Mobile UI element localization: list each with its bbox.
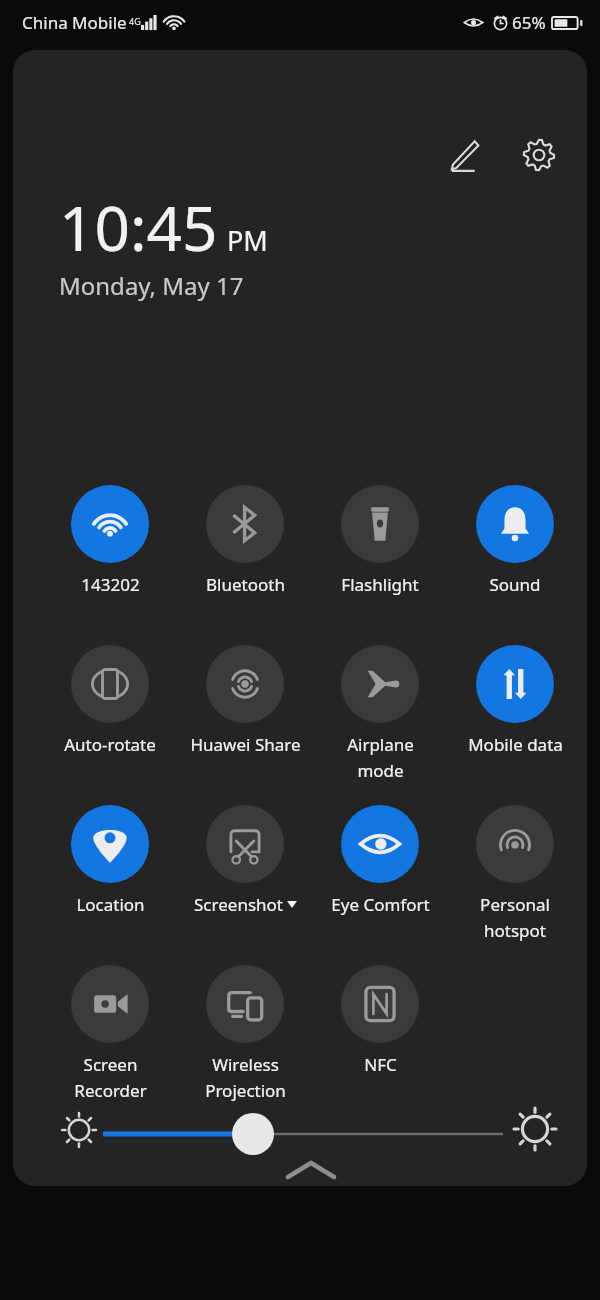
staticText: Eye Comfort [331,893,430,916]
button[interactable]: Personal hotspot [448,805,582,942]
staticText: PM [227,222,268,259]
button[interactable]: Increase brightness [504,1098,566,1160]
staticText: Huawei Share [190,733,301,756]
staticText: 4G [129,15,141,27]
staticText: Wireless Projection [205,1053,286,1102]
staticText: 10:45 [59,185,218,269]
button[interactable]: NFC [313,965,447,1076]
button[interactable]: Screenshot [178,805,312,916]
staticText: 65% [512,11,546,34]
button[interactable]: Auto-rotate [43,645,177,756]
button[interactable]: 143202 [43,485,177,596]
button[interactable]: Decrease brightness [51,1102,107,1158]
button[interactable]: Wireless Projection [178,965,312,1102]
staticText: Airplane mode [347,733,414,782]
button[interactable]: Settings [510,126,568,184]
button[interactable]: Bluetooth [178,485,312,596]
staticText: Location [76,893,145,916]
button[interactable]: Eye Comfort [313,805,447,916]
staticText: Mobile data [468,733,563,756]
staticText: Screen Recorder [74,1053,147,1102]
button[interactable]: Sound [448,485,582,596]
button[interactable]: Screen Recorder [43,965,177,1102]
staticText: China Mobile [22,11,127,34]
staticText: Sound [489,573,541,596]
button[interactable]: Airplane mode [313,645,447,782]
staticText: NFC [364,1053,397,1076]
button[interactable]: Location [43,805,177,916]
button[interactable]: Mobile data [448,645,582,756]
staticText: Personal hotspot [480,893,550,942]
button[interactable]: Huawei Share [178,645,312,756]
button[interactable]: Edit [435,126,493,184]
staticText: Screenshot [194,893,283,916]
staticText: 143202 [81,573,140,596]
staticText: Bluetooth [206,573,285,596]
staticText: Flashlight [341,573,419,596]
button[interactable]: Flashlight [313,485,447,596]
staticText: Monday, May 17 [59,269,244,302]
staticText: Auto-rotate [64,733,156,756]
button[interactable]: Brightness slider [103,1110,503,1158]
